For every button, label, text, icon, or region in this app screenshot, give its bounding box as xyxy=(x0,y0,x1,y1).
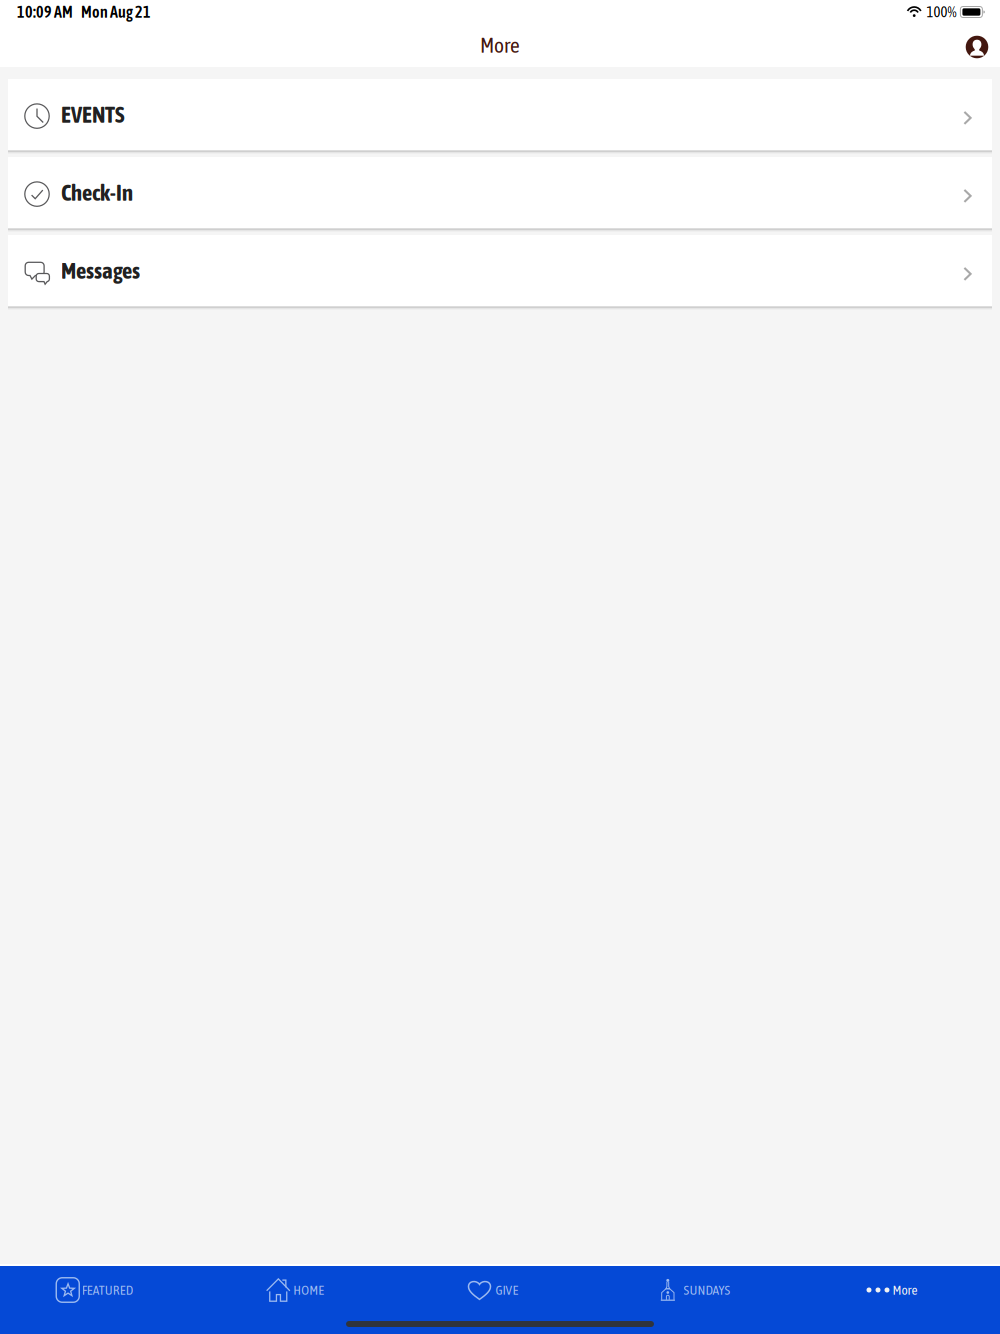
staticText: 10:09 AM xyxy=(17,3,73,21)
button[interactable]: Check-In xyxy=(8,157,992,228)
staticText: Check-In xyxy=(61,179,133,205)
button[interactable]: Account xyxy=(955,25,999,69)
staticText: HOME xyxy=(293,1282,324,1298)
button[interactable]: More xyxy=(800,1266,1000,1314)
staticText: More xyxy=(892,1282,917,1298)
staticText: 100% xyxy=(926,4,956,20)
button[interactable]: EVENTS xyxy=(8,79,992,150)
staticText: EVENTS xyxy=(61,101,125,127)
button[interactable]: Messages xyxy=(8,235,992,306)
staticText: Messages xyxy=(61,257,140,283)
button[interactable]: HOME xyxy=(200,1266,400,1314)
staticText: Mon Aug 21 xyxy=(81,3,151,21)
staticText: More xyxy=(480,33,520,57)
staticText: GIVE xyxy=(495,1282,518,1298)
staticText: FEATURED xyxy=(82,1282,133,1298)
button[interactable]: GIVE xyxy=(400,1266,600,1314)
staticText: SUNDAYS xyxy=(683,1282,730,1298)
button[interactable]: SUNDAYS xyxy=(600,1266,800,1314)
button[interactable]: FEATURED xyxy=(0,1266,200,1314)
